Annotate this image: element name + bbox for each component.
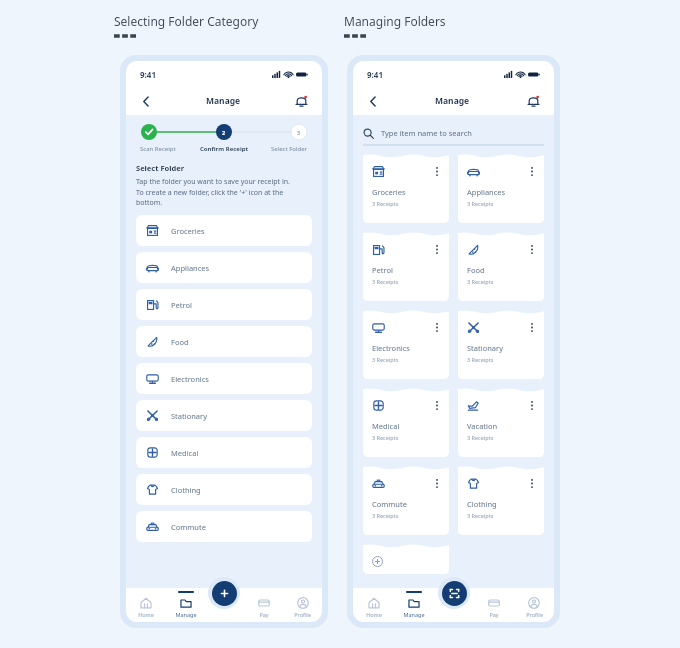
- staticText: 3 Receipts: [372, 278, 399, 285]
- button[interactable]: More options: [526, 243, 538, 255]
- button[interactable]: Notifications: [524, 92, 542, 110]
- staticText: Appliances: [467, 187, 506, 197]
- button[interactable]: Type item name to search: [363, 121, 544, 145]
- staticText: 3 Receipts: [372, 512, 399, 519]
- staticText: Manage: [403, 611, 425, 618]
- button[interactable]: Groceries: [136, 215, 312, 246]
- staticText: 3 Receipts: [467, 356, 494, 363]
- staticText: Electronics: [171, 374, 209, 384]
- button[interactable]: More options: [458, 154, 544, 223]
- staticText: Select Folder: [271, 145, 308, 153]
- staticText: 3 Receipts: [467, 200, 494, 207]
- button[interactable]: More options: [363, 232, 449, 301]
- staticText: 3 Receipts: [467, 278, 494, 285]
- staticText: Profile: [526, 611, 543, 618]
- button[interactable]: Medical: [136, 437, 312, 468]
- staticText: Clothing: [467, 499, 497, 509]
- button[interactable]: More options: [363, 388, 449, 457]
- staticText: Electronics: [372, 343, 410, 353]
- button[interactable]: Appliances: [136, 252, 312, 283]
- staticText: Tap the folder you want to save your rec…: [136, 177, 290, 207]
- staticText: 3 Receipts: [372, 200, 399, 207]
- button[interactable]: More options: [526, 399, 538, 411]
- staticText: Petrol: [372, 265, 393, 275]
- button[interactable]: Pay: [244, 588, 283, 622]
- button[interactable]: Home: [353, 588, 394, 622]
- staticText: Food: [467, 265, 485, 275]
- button[interactable]: Stationary: [136, 400, 312, 431]
- staticText: Commute: [171, 522, 206, 532]
- staticText: Stationary: [467, 343, 503, 353]
- button[interactable]: More options: [363, 310, 449, 379]
- button[interactable]: Manage: [166, 588, 205, 622]
- staticText: 3: [297, 129, 301, 136]
- button[interactable]: More options: [363, 154, 449, 223]
- staticText: Scan Receipt: [140, 145, 176, 153]
- button[interactable]: Profile: [283, 588, 322, 622]
- staticText: Petrol: [171, 300, 192, 310]
- button[interactable]: More options: [431, 321, 443, 333]
- staticText: 2: [222, 129, 226, 136]
- staticText: 3 Receipts: [467, 434, 494, 441]
- staticText: Food: [171, 337, 189, 347]
- button[interactable]: Home: [126, 588, 166, 622]
- staticText: Selecting Folder Category: [114, 13, 259, 29]
- staticText: Groceries: [372, 187, 406, 197]
- staticText: Home: [138, 611, 154, 618]
- button[interactable]: Scan receipt: [442, 581, 467, 606]
- button[interactable]: Back: [138, 93, 154, 109]
- button[interactable]: More options: [458, 466, 544, 535]
- staticText: Appliances: [171, 263, 210, 273]
- button[interactable]: Notifications: [292, 92, 310, 110]
- button[interactable]: Pay: [474, 588, 514, 622]
- staticText: 9:41: [140, 69, 156, 80]
- button[interactable]: Petrol: [136, 289, 312, 320]
- staticText: Clothing: [171, 485, 201, 495]
- button[interactable]: Add folder: [363, 544, 449, 574]
- button[interactable]: More options: [458, 388, 544, 457]
- button[interactable]: Food: [136, 326, 312, 357]
- button[interactable]: More options: [458, 232, 544, 301]
- staticText: Manage: [175, 611, 197, 618]
- staticText: Stationary: [171, 411, 207, 421]
- staticText: 9:41: [367, 69, 383, 80]
- button[interactable]: Electronics: [136, 363, 312, 394]
- button[interactable]: More options: [431, 399, 443, 411]
- button[interactable]: More options: [363, 466, 449, 535]
- staticText: Commute: [372, 499, 407, 509]
- staticText: Manage: [206, 95, 241, 107]
- staticText: Pay: [489, 611, 499, 618]
- staticText: Vacation: [467, 421, 498, 431]
- staticText: 3 Receipts: [372, 356, 399, 363]
- staticText: Pay: [259, 611, 269, 618]
- staticText: Medical: [372, 421, 400, 431]
- button[interactable]: Commute: [136, 511, 312, 542]
- button[interactable]: More options: [458, 310, 544, 379]
- button[interactable]: More options: [431, 243, 443, 255]
- button[interactable]: Back: [365, 93, 381, 109]
- staticText: Home: [366, 611, 382, 618]
- staticText: Manage: [435, 95, 470, 107]
- button[interactable]: More options: [526, 321, 538, 333]
- button[interactable]: More options: [526, 477, 538, 489]
- button[interactable]: Add folder: [212, 581, 237, 606]
- staticText: Groceries: [171, 226, 205, 236]
- button[interactable]: More options: [431, 477, 443, 489]
- staticText: Confirm Receipt: [200, 145, 249, 153]
- staticText: Profile: [294, 611, 311, 618]
- staticText: 3 Receipts: [372, 434, 399, 441]
- staticText: 3 Receipts: [467, 512, 494, 519]
- button[interactable]: Manage: [394, 588, 434, 622]
- staticText: Managing Folders: [344, 13, 446, 29]
- button[interactable]: More options: [526, 165, 538, 177]
- staticText: Type item name to search: [381, 128, 472, 138]
- staticText: Select Folder: [136, 163, 185, 173]
- button[interactable]: Profile: [514, 588, 554, 622]
- button[interactable]: More options: [431, 165, 443, 177]
- button[interactable]: Clothing: [136, 474, 312, 505]
- staticText: Medical: [171, 448, 199, 458]
